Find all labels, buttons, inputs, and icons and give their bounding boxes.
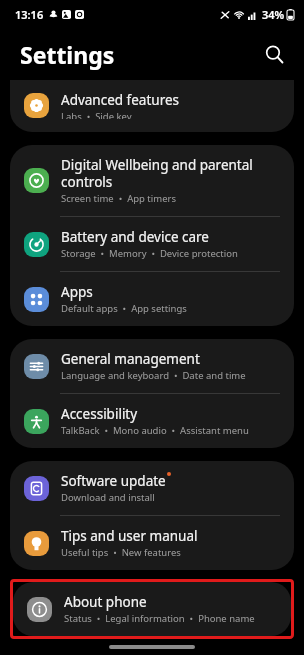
staticText: Default apps • App settings xyxy=(61,302,187,315)
staticText: Labs • Side key xyxy=(61,110,132,119)
staticText: Language and keyboard • Date and time xyxy=(61,369,246,382)
staticText: Software update xyxy=(61,472,166,490)
button[interactable]: Tips and user manual xyxy=(10,516,294,570)
staticText: Battery and device care xyxy=(61,228,209,246)
staticText: Storage • Memory • Device protection xyxy=(61,247,238,260)
staticText: Screen time • App timers xyxy=(61,192,176,205)
staticText: Settings xyxy=(20,39,115,70)
button[interactable]: Apps xyxy=(10,272,294,326)
staticText: 13:16 xyxy=(15,7,44,22)
button[interactable]: About phone xyxy=(13,582,291,636)
staticText: Download and install xyxy=(61,491,155,504)
button[interactable]: Accessibility xyxy=(10,394,294,448)
staticText: 34% xyxy=(262,7,285,22)
staticText: Useful tips • New features xyxy=(61,546,181,559)
button[interactable]: General management xyxy=(10,339,294,393)
staticText: Status • Legal information • Phone name xyxy=(64,612,255,625)
staticText: General management xyxy=(61,350,200,368)
button[interactable]: Search xyxy=(256,36,292,72)
staticText: About phone xyxy=(64,593,147,611)
staticText: Tips and user manual xyxy=(61,527,198,545)
staticText: Digital Wellbeing and parental controls xyxy=(61,156,253,191)
button[interactable]: Software update xyxy=(10,461,294,515)
staticText: Apps xyxy=(61,283,93,301)
button[interactable]: Digital Wellbeing and parental controls xyxy=(10,145,294,216)
button[interactable]: Advanced features xyxy=(10,80,294,130)
staticText: TalkBack • Mono audio • Assistant menu xyxy=(61,424,249,437)
staticText: Accessibility xyxy=(61,405,138,423)
staticText: Advanced features xyxy=(61,91,180,109)
button[interactable]: Battery and device care xyxy=(10,217,294,271)
